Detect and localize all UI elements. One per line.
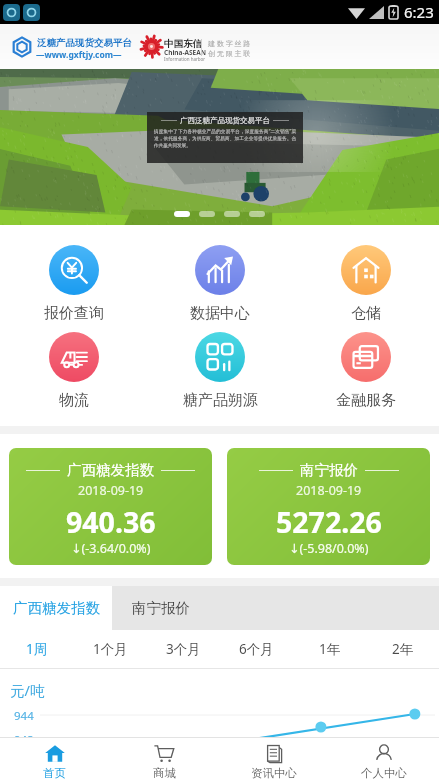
staticText: 2018-09-19 [78,482,144,499]
button[interactable]: Page 1 [174,211,190,217]
button[interactable]: Page 3 [224,211,240,217]
staticText: China-ASEAN [164,48,207,57]
button[interactable]: 1年 [293,630,366,668]
staticText: ↓(-3.64/0.0%) [71,540,151,557]
button[interactable]: 商城 [109,738,219,782]
button[interactable]: 数据中心 [147,245,293,323]
staticText: 商城 [153,766,176,780]
staticText: 个人中心 [361,766,407,780]
button[interactable]: 南宁报价 [112,586,210,630]
staticText: 金融服务 [336,391,396,410]
button[interactable]: 广西糖发指数 [0,586,112,630]
button[interactable]: 报价查询 [0,245,147,323]
staticText: 搞度集中了下力各种糖业产品的交易平台，深度服务商“二次销售”渠道，依托服务商，为… [154,128,296,149]
button[interactable]: 仓储 [293,245,439,323]
staticText: Information harbor [164,56,206,62]
staticText: 糖产品朔源 [183,391,258,410]
button[interactable]: 首页 [0,738,109,782]
button[interactable]: 糖产品朔源 [147,332,293,410]
staticText: 3个月 [166,640,201,658]
staticText: 1年 [319,640,341,658]
button[interactable]: 6个月 [220,630,293,668]
button[interactable]: 1个月 [74,630,147,668]
staticText: —www.gxftjy.com— [36,49,122,61]
button[interactable]: 1周 [0,630,74,668]
staticText: 首页 [43,766,66,780]
staticText: 数据中心 [190,304,250,323]
button[interactable]: 资讯中心 [219,738,329,782]
staticText: 5272.26 [276,503,382,542]
staticText: 944 [14,708,34,724]
staticText: 942 [14,732,34,737]
button[interactable]: 广西糖发指数 [9,448,212,565]
staticText: 中国东信 [164,38,202,50]
button[interactable]: 3个月 [147,630,220,668]
button[interactable]: 2年 [366,630,439,668]
staticText: 南宁报价 [300,461,358,479]
staticText: 6:23 [404,2,434,22]
staticText: 广西糖发指数 [67,461,154,479]
staticText: 广西泛糖产品现货交易平台 [180,116,270,125]
staticText: 仓储 [351,304,381,323]
staticText: 创 无 限 主 联 [208,49,251,59]
staticText: 2年 [392,640,414,658]
button[interactable]: Page 2 [199,211,215,217]
staticText: 2018-09-19 [296,482,362,499]
button[interactable]: 南宁报价 [227,448,430,565]
staticText: 南宁报价 [132,599,190,617]
staticText: 元/吨 [10,680,45,700]
button[interactable]: 个人中心 [329,738,439,782]
staticText: 泛糖产品现货交易平台 [37,37,132,49]
staticText: 1个月 [93,640,128,658]
button[interactable]: 物流 [0,332,147,410]
staticText: ↓(-5.98/0.0%) [289,540,369,557]
button[interactable]: 金融服务 [293,332,439,410]
staticText: 6个月 [239,640,274,658]
staticText: 建 数 字 丝 路 [208,39,251,49]
staticText: 物流 [59,391,89,410]
staticText: 940.36 [66,503,156,542]
button[interactable]: Page 4 [249,211,265,217]
staticText: 资讯中心 [251,766,297,780]
staticText: 1周 [26,640,48,658]
staticText: 广西糖发指数 [13,599,100,617]
staticText: 报价查询 [44,304,104,323]
